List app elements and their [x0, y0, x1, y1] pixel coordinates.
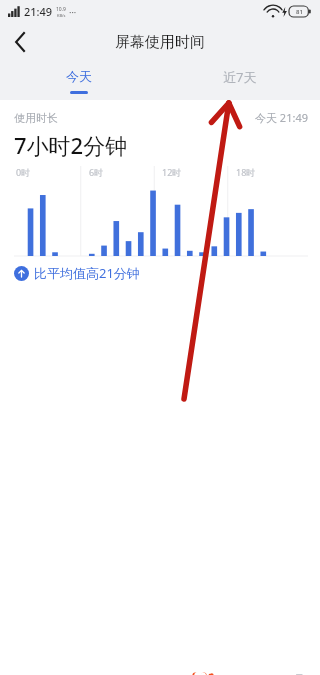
staticText: 比平均值高21分钟 — [34, 264, 140, 282]
staticText: 今天 — [66, 68, 92, 84]
staticText: 81 — [296, 8, 303, 16]
staticText: 12时 — [162, 166, 182, 178]
staticText: 6时 — [89, 166, 104, 178]
staticText: 21:49 — [24, 4, 53, 19]
staticText: 使用时长 — [14, 111, 58, 125]
button[interactable]: 今天 — [0, 62, 160, 96]
button[interactable]: Back — [0, 22, 40, 62]
staticText: 今天 21:49 — [255, 110, 308, 125]
staticText: 0时 — [16, 166, 31, 178]
staticText: ··· — [69, 6, 77, 18]
staticText: KB/s — [57, 13, 66, 18]
staticText: 7小时2分钟 — [14, 130, 128, 160]
staticText: 近7天 — [223, 68, 257, 86]
staticText: 10.9 — [56, 6, 66, 13]
button[interactable]: 近7天 — [160, 62, 320, 96]
staticText: 18时 — [236, 166, 256, 178]
staticText: 屏幕使用时间 — [115, 33, 205, 52]
